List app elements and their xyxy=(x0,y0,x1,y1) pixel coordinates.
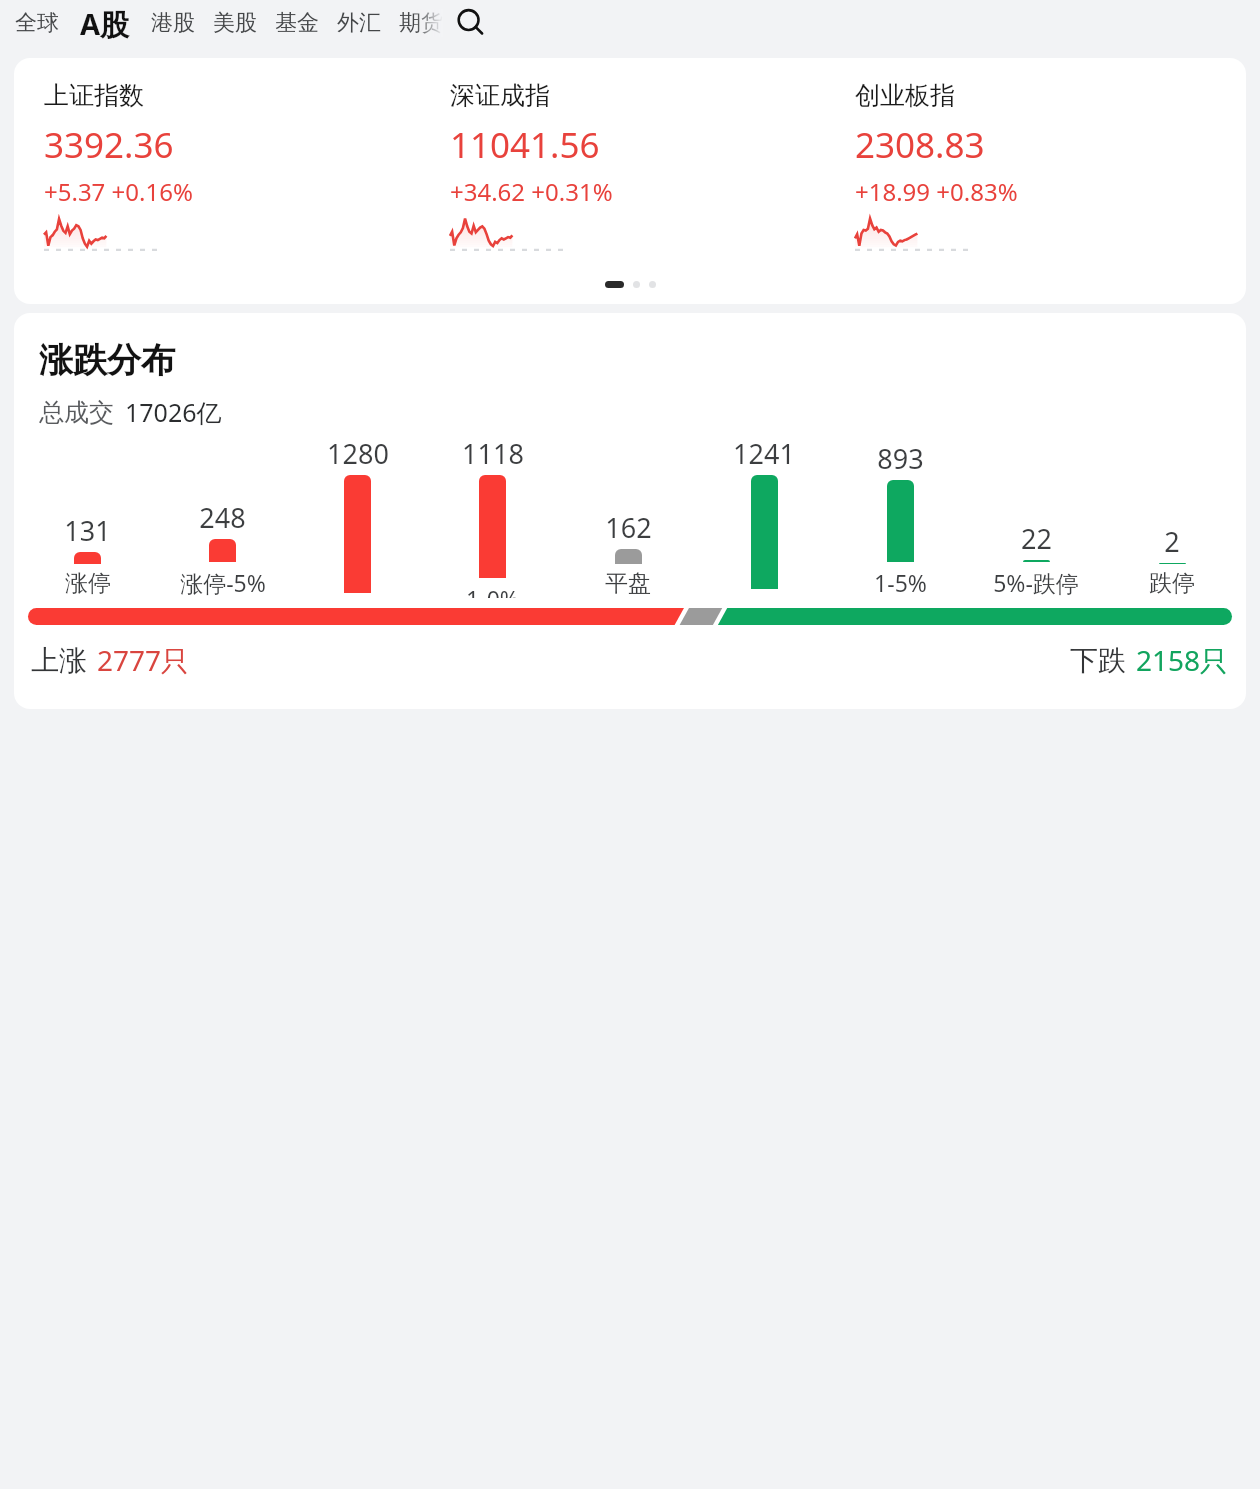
staticText: 涨跌分布 xyxy=(39,339,175,382)
button[interactable]: 全球 xyxy=(13,5,61,41)
staticText: 上证指数 xyxy=(44,80,144,111)
button[interactable]: 期货 xyxy=(397,5,445,41)
staticText: 深证成指 xyxy=(450,80,550,111)
staticText: 11041.56 xyxy=(450,121,600,169)
button[interactable]: 涨跌分布 xyxy=(14,313,1246,709)
staticText: 上涨 xyxy=(31,643,87,678)
staticText: 创业板指 xyxy=(855,80,955,111)
staticText: 2777只 xyxy=(97,641,190,679)
button[interactable]: 美股 xyxy=(211,5,259,41)
button[interactable]: A股 xyxy=(78,0,132,45)
staticText: 涨停-5% xyxy=(180,567,266,598)
staticText: 1-5% xyxy=(874,567,927,598)
staticText: +34.62 +0.31% xyxy=(450,175,613,208)
staticText: 基金 xyxy=(275,9,319,37)
staticText: 5%-跌停 xyxy=(993,567,1079,598)
staticText: 17026亿 xyxy=(125,395,222,429)
staticText: 893 xyxy=(877,440,924,477)
button[interactable]: 外汇 xyxy=(335,5,383,41)
staticText: 1241 xyxy=(733,435,795,472)
button[interactable]: 港股 xyxy=(149,5,197,41)
staticText: 总成交 xyxy=(39,397,114,428)
staticText: 1280 xyxy=(327,435,389,472)
staticText: 3392.36 xyxy=(44,121,174,169)
button[interactable]: 基金 xyxy=(273,5,321,41)
staticText: 2 xyxy=(1164,523,1180,560)
button[interactable]: Search xyxy=(449,1,493,45)
staticText: +18.99 +0.83% xyxy=(855,175,1018,208)
staticText: A股 xyxy=(80,4,130,41)
staticText: 2308.83 xyxy=(855,121,985,169)
staticText: 全球 xyxy=(15,9,59,37)
staticText: 港股 xyxy=(151,9,195,37)
button[interactable]: 上证指数 xyxy=(14,58,1246,304)
staticText: 1-0% xyxy=(466,583,519,598)
staticText: 248 xyxy=(199,499,246,536)
staticText: 外汇 xyxy=(337,9,381,37)
staticText: 平盘 xyxy=(605,569,651,598)
staticText: 162 xyxy=(605,509,652,546)
staticText: 131 xyxy=(64,512,111,549)
staticText: 美股 xyxy=(213,9,257,37)
staticText: 22 xyxy=(1021,520,1052,557)
staticText: 涨停 xyxy=(65,569,111,598)
staticText: 下跌 xyxy=(1070,643,1126,678)
staticText: 1118 xyxy=(462,435,524,472)
staticText: 跌停 xyxy=(1149,569,1195,598)
staticText: 2158只 xyxy=(1136,641,1229,679)
staticText: +5.37 +0.16% xyxy=(44,175,193,208)
staticText: 期货 xyxy=(399,9,443,37)
